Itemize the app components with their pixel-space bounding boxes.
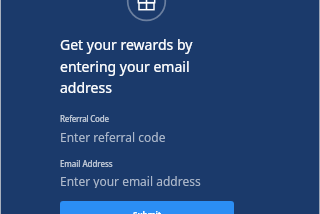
staticText: Referral Code bbox=[60, 113, 109, 124]
staticText: Enter your email address bbox=[60, 173, 201, 188]
staticText: Email Address bbox=[60, 158, 113, 169]
staticText: Enter referral code bbox=[60, 129, 166, 143]
button[interactable]: Referral Code bbox=[60, 111, 234, 143]
staticText: Submit bbox=[133, 209, 162, 214]
button[interactable]: Submit bbox=[60, 201, 234, 214]
button[interactable]: Email Address bbox=[60, 156, 234, 188]
button[interactable]: Rewards gift bbox=[127, 0, 166, 21]
staticText: Get your rewards by entering your email … bbox=[60, 35, 234, 97]
